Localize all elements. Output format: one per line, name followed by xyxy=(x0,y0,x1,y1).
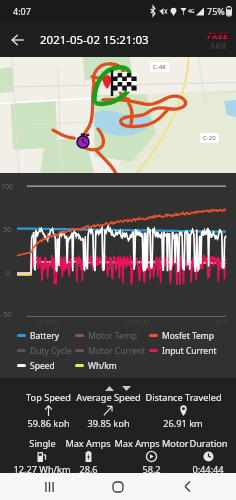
button[interactable]: Navigate up xyxy=(0,22,36,57)
staticText: Duty Cycle xyxy=(30,345,72,357)
staticText: Motor Current xyxy=(88,345,146,357)
button[interactable]: Input Current xyxy=(149,343,223,358)
staticText: Motor Temp xyxy=(88,330,137,342)
staticText: C-48 xyxy=(153,63,166,71)
button[interactable]: Back xyxy=(167,473,207,500)
staticText: 28.6 xyxy=(79,463,98,473)
staticText: 50 xyxy=(3,225,12,235)
staticText: Wh/km xyxy=(88,360,117,372)
staticText: Speed xyxy=(30,360,55,372)
button[interactable]: Max Amps Motor xyxy=(91,437,211,473)
staticText: 12.27 Wh/km xyxy=(13,463,71,473)
staticText: Mosfet Temp xyxy=(162,330,215,342)
staticText: 0:44:44 xyxy=(192,463,224,473)
button[interactable]: Motor Temp xyxy=(75,328,149,343)
button[interactable]: Expand xyxy=(103,384,116,392)
button[interactable]: Motor Current xyxy=(75,343,149,358)
button[interactable]: Home xyxy=(98,473,138,500)
button[interactable]: Mosfet Temp xyxy=(149,328,223,343)
staticText: Single xyxy=(29,437,56,450)
button[interactable]: Top Speed xyxy=(0,391,108,427)
staticText: 15:45:03 xyxy=(126,318,150,326)
staticText: Input Current xyxy=(162,345,217,357)
button[interactable]: Battery xyxy=(17,328,75,343)
button[interactable]: Single xyxy=(0,437,102,473)
staticText: Average Speed xyxy=(76,391,141,404)
staticText: C-20 xyxy=(203,134,216,142)
staticText: 2021-05-02 15:21:03 xyxy=(40,32,149,48)
staticText: 58.2 xyxy=(142,463,161,473)
staticText: FREE xyxy=(207,29,229,41)
staticText: Battery xyxy=(30,330,60,342)
staticText: 4:07 xyxy=(13,5,31,17)
staticText: SK8 xyxy=(210,39,227,49)
button[interactable]: Distance Traveled xyxy=(123,391,236,427)
staticText: Duration xyxy=(189,437,228,450)
button[interactable]: Collapse xyxy=(120,384,133,392)
staticText: Top Speed xyxy=(26,391,71,404)
button[interactable]: Duty Cycle xyxy=(17,343,75,358)
staticText: Max Amps Motor xyxy=(114,437,189,450)
staticText: 100 xyxy=(1,182,14,192)
staticText: -50 xyxy=(1,310,12,320)
staticText: 75% xyxy=(207,5,225,17)
staticText: 39.85 kph xyxy=(87,417,130,427)
button[interactable]: Recent apps xyxy=(29,473,69,500)
button[interactable]: Wh/km xyxy=(75,358,149,373)
staticText: 4G xyxy=(188,8,195,15)
staticText: 59.86 kph xyxy=(27,417,70,427)
staticText: 26.91 km xyxy=(163,417,203,427)
button[interactable]: Average Speed xyxy=(48,391,168,427)
button[interactable]: FreeSK8 logo xyxy=(204,29,232,51)
button[interactable]: Speed xyxy=(17,358,75,373)
staticText: 15:30:03 xyxy=(36,318,60,326)
staticText: 16:0 xyxy=(215,318,227,326)
button[interactable]: Max Amps xyxy=(28,437,148,473)
staticText: 0 xyxy=(6,269,11,279)
staticText: Max Amps xyxy=(65,437,111,450)
button[interactable]: Duration xyxy=(148,437,236,473)
staticText: Distance Traveled xyxy=(145,391,222,404)
